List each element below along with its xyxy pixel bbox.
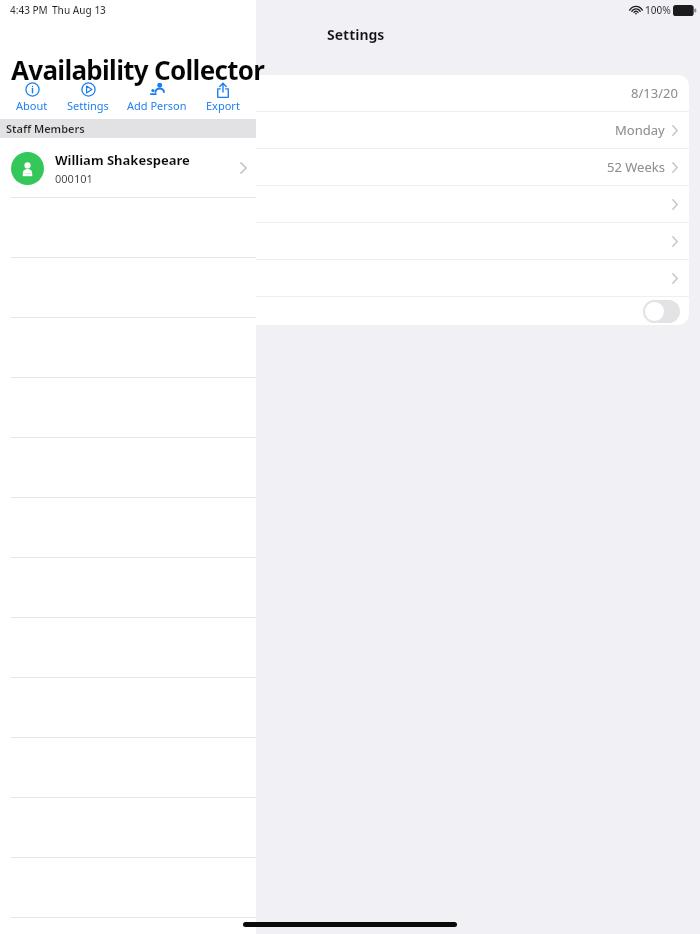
button[interactable] <box>0 798 256 858</box>
staticText: 000101 <box>55 171 93 186</box>
staticText: 100% <box>645 3 671 17</box>
staticText: About <box>16 98 48 113</box>
button[interactable] <box>0 678 256 738</box>
button[interactable]: 52 Weeks <box>170 149 689 185</box>
button[interactable]: Add Person <box>124 81 190 113</box>
button[interactable] <box>0 378 256 438</box>
button[interactable] <box>0 858 256 918</box>
button[interactable] <box>0 918 256 934</box>
button[interactable]: Toggle setting <box>170 297 689 325</box>
staticText: Thu Aug 13 <box>52 3 106 17</box>
button[interactable]: Monday <box>170 112 689 148</box>
button[interactable]: 8/13/20 <box>170 75 689 111</box>
staticText: Staff Members <box>6 121 85 136</box>
staticText: 8/13/20 <box>631 84 678 102</box>
other: Export <box>215 82 231 98</box>
staticText: Export <box>206 98 240 113</box>
button[interactable] <box>0 738 256 798</box>
other: Settings <box>81 82 96 97</box>
button[interactable] <box>0 258 256 318</box>
staticText: 52 Weeks <box>607 158 665 176</box>
button[interactable] <box>0 618 256 678</box>
staticText: Settings <box>327 25 385 44</box>
button[interactable]: Export <box>203 81 243 113</box>
button[interactable] <box>0 498 256 558</box>
other: Toggle setting <box>643 300 680 323</box>
button[interactable] <box>0 558 256 618</box>
staticText: 4:43 PM <box>10 3 48 17</box>
button[interactable]: Settings <box>64 81 112 113</box>
button[interactable]: William Shakespeare <box>0 138 256 198</box>
other: Add Person <box>149 81 166 98</box>
staticText: Monday <box>615 121 665 139</box>
button[interactable] <box>0 438 256 498</box>
button[interactable]: About <box>13 81 51 113</box>
button[interactable] <box>0 318 256 378</box>
staticText: Availability Collector <box>11 52 265 87</box>
staticText: Add Person <box>127 98 187 113</box>
staticText: William Shakespeare <box>55 151 190 169</box>
staticText: Settings <box>67 98 109 113</box>
other: About <box>25 82 40 97</box>
button[interactable] <box>0 198 256 258</box>
